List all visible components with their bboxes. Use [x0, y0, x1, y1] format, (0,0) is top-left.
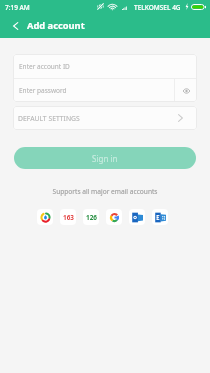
button[interactable]: Enter account ID	[13, 54, 197, 78]
staticText: 7:19 AM	[5, 3, 30, 12]
button[interactable]: 163 Mail	[60, 209, 76, 225]
staticText: Sign in	[92, 153, 118, 164]
button[interactable]: 126 Mail	[83, 209, 99, 225]
staticText: Enter account ID	[19, 62, 70, 71]
button[interactable]: NetEase Mail	[37, 209, 53, 225]
button[interactable]: Gmail	[106, 209, 122, 225]
staticText: TELKOMSEL 4G	[134, 3, 181, 12]
staticText: Enter password	[19, 86, 174, 95]
button[interactable]: DEFAULT SETTINGS	[13, 106, 197, 130]
button[interactable]: Show password	[175, 79, 197, 102]
button[interactable]: Back	[0, 14, 27, 38]
staticText: Supports all major email accounts	[0, 187, 210, 196]
staticText: 126	[86, 213, 97, 222]
staticText: 163	[63, 213, 74, 222]
button[interactable]: Exchange	[152, 209, 168, 225]
staticText: DEFAULT SETTINGS	[18, 114, 163, 123]
button[interactable]: Sign in	[14, 147, 196, 169]
button[interactable]: Outlook	[129, 209, 145, 225]
staticText: Add account	[27, 19, 85, 32]
